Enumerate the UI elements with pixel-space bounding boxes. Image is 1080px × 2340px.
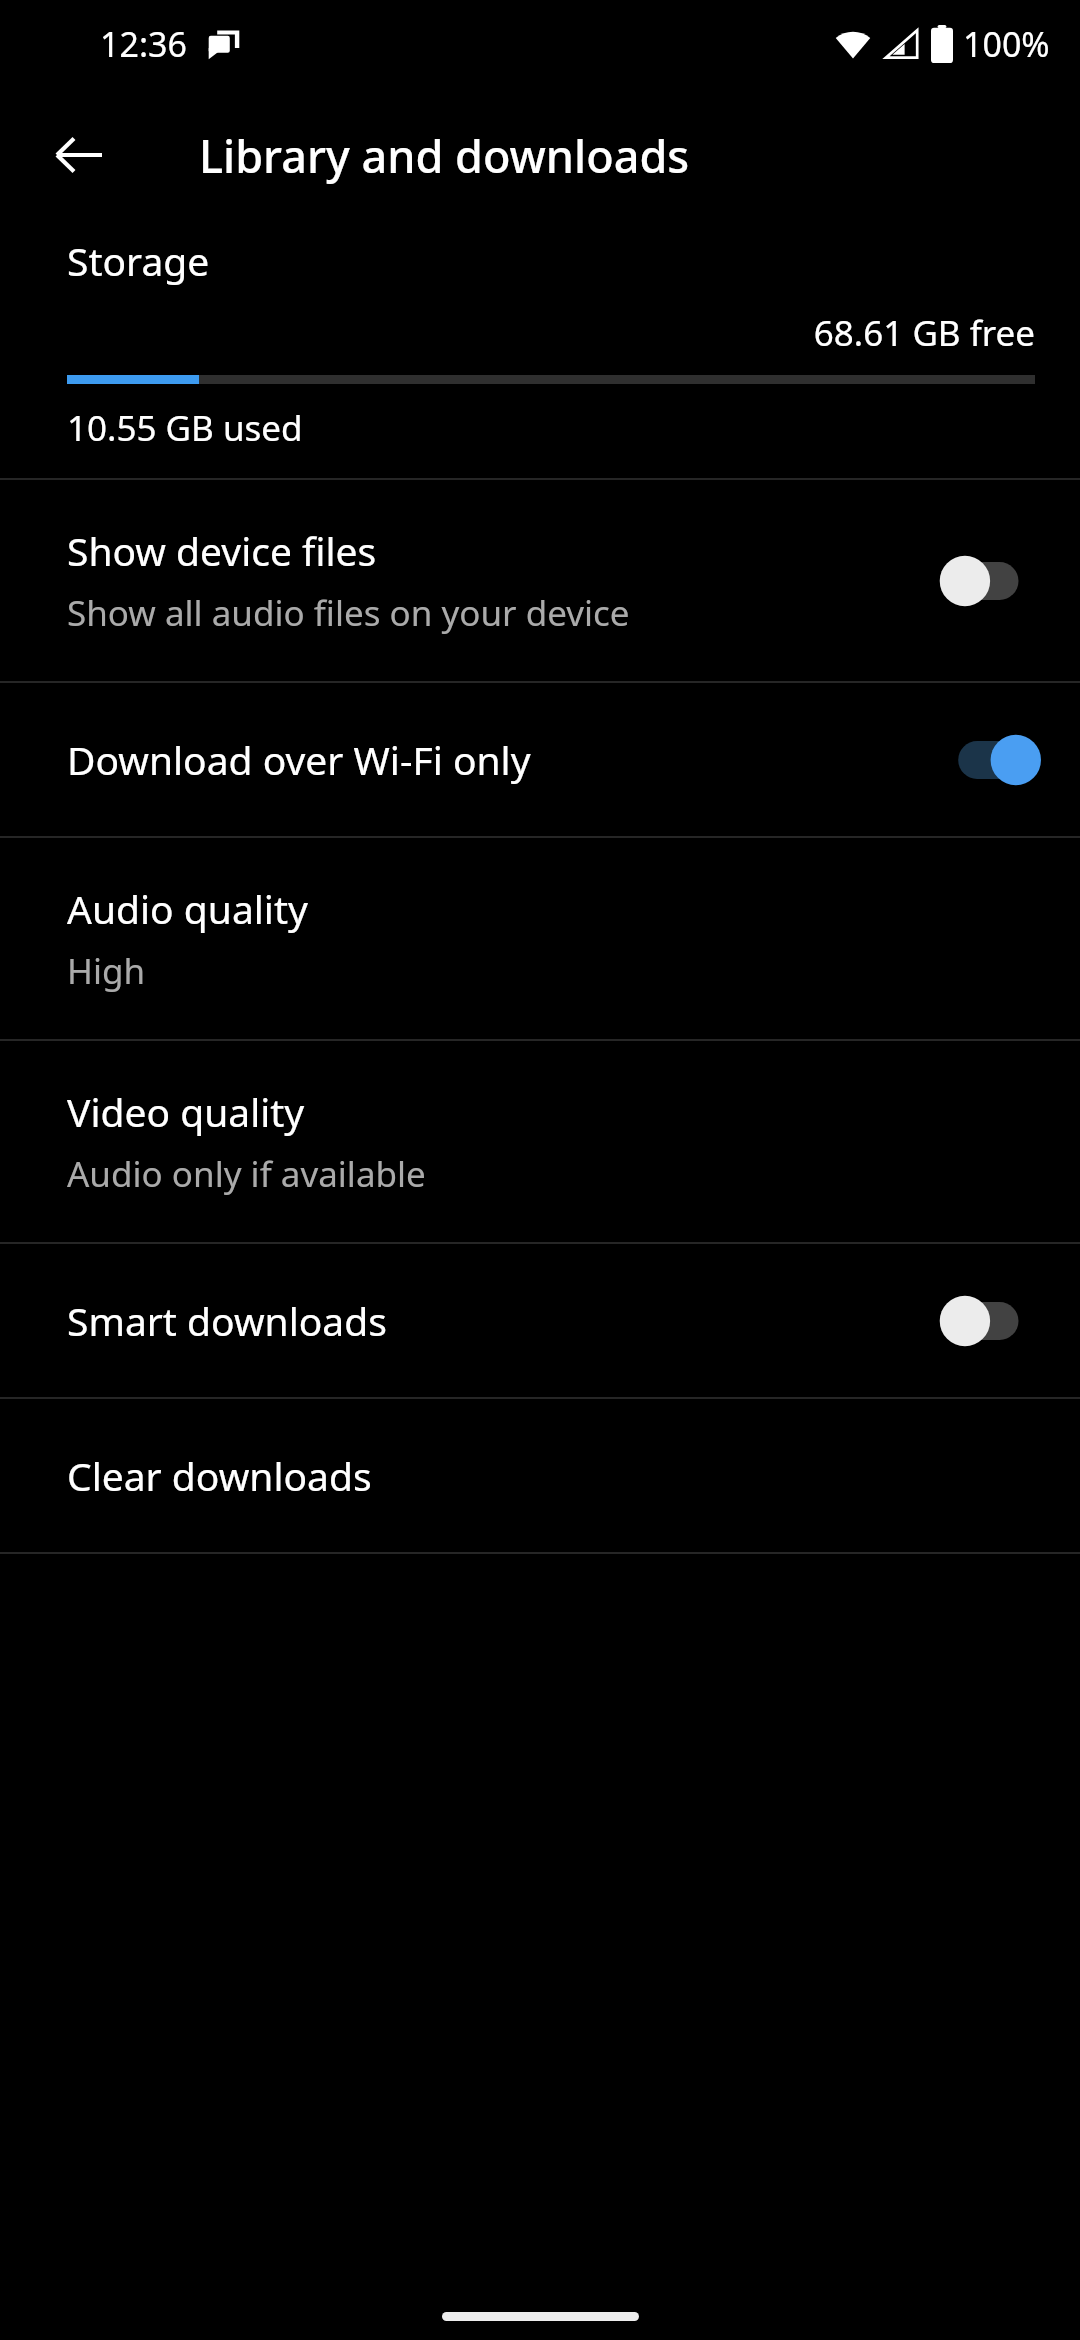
button[interactable]: Show device files bbox=[0, 480, 1080, 681]
button[interactable]: Off bbox=[939, 1291, 1035, 1351]
staticText: Library and downloads bbox=[199, 125, 690, 186]
staticText: 12:36 bbox=[100, 21, 187, 67]
staticText: High bbox=[67, 947, 146, 995]
button[interactable]: Off bbox=[939, 551, 1035, 611]
staticText: 68.61 GB free bbox=[67, 309, 1035, 357]
staticText: 10.55 GB used bbox=[67, 404, 303, 452]
staticText: Show all audio files on your device bbox=[67, 589, 630, 637]
button[interactable]: Video quality bbox=[0, 1041, 1080, 1242]
staticText: Smart downloads bbox=[67, 1294, 939, 1347]
button[interactable]: Download over Wi-Fi only bbox=[0, 683, 1080, 836]
staticText: Download over Wi-Fi only bbox=[67, 733, 939, 786]
button[interactable]: Storage bbox=[0, 222, 1080, 478]
staticText: Video quality bbox=[67, 1085, 305, 1138]
staticText: Storage bbox=[67, 234, 210, 287]
button[interactable]: Clear downloads bbox=[0, 1399, 1080, 1552]
button[interactable]: On bbox=[939, 730, 1035, 790]
staticText: Audio only if available bbox=[67, 1150, 426, 1198]
button[interactable]: Smart downloads bbox=[0, 1244, 1080, 1397]
staticText: Clear downloads bbox=[67, 1449, 372, 1502]
button[interactable]: Back bbox=[31, 107, 127, 203]
button[interactable]: Audio quality bbox=[0, 838, 1080, 1039]
staticText: Show device files bbox=[67, 524, 377, 577]
staticText: Audio quality bbox=[67, 882, 308, 935]
staticText: 100% bbox=[963, 21, 1050, 67]
